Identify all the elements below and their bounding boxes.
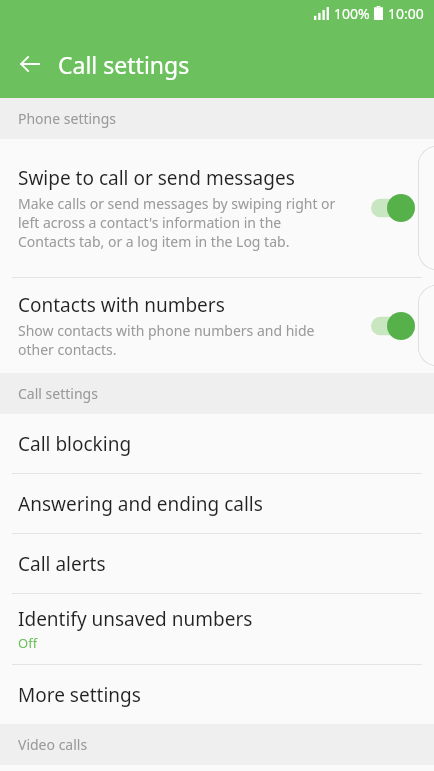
staticText: Video calls xyxy=(18,735,88,754)
staticText: More settings xyxy=(18,682,141,708)
button[interactable]: Back xyxy=(8,42,52,86)
staticText: Call settings xyxy=(18,384,98,403)
staticText: Call blocking xyxy=(18,431,132,457)
button[interactable]: Toggle Swipe to call or send messages xyxy=(356,185,430,231)
staticText: Call alerts xyxy=(18,551,106,577)
button[interactable]: Call alerts xyxy=(0,534,434,593)
staticText: 10:00 xyxy=(388,4,424,23)
button[interactable]: Swipe to call or send messages xyxy=(0,139,434,277)
button[interactable]: More settings xyxy=(0,665,434,724)
button[interactable]: Call blocking xyxy=(0,414,434,473)
staticText: Identify unsaved numbers xyxy=(18,606,253,632)
staticText: Swipe to call or send messages xyxy=(18,165,295,191)
staticText: 100% xyxy=(334,4,370,23)
staticText: Call settings xyxy=(58,49,190,80)
staticText: Phone settings xyxy=(18,109,117,128)
staticText: Answering and ending calls xyxy=(18,491,263,517)
staticText: Contacts with numbers xyxy=(18,292,225,318)
staticText: Make calls or send messages by swiping r… xyxy=(18,194,342,251)
staticText: Show contacts with phone numbers and hid… xyxy=(18,321,342,359)
button[interactable]: Contacts with numbers xyxy=(0,278,434,373)
button[interactable]: Toggle Contacts with numbers xyxy=(356,303,430,349)
button[interactable]: Identify unsaved numbers xyxy=(0,594,434,664)
staticText: Off xyxy=(18,634,38,652)
button[interactable]: Answering and ending calls xyxy=(0,474,434,533)
